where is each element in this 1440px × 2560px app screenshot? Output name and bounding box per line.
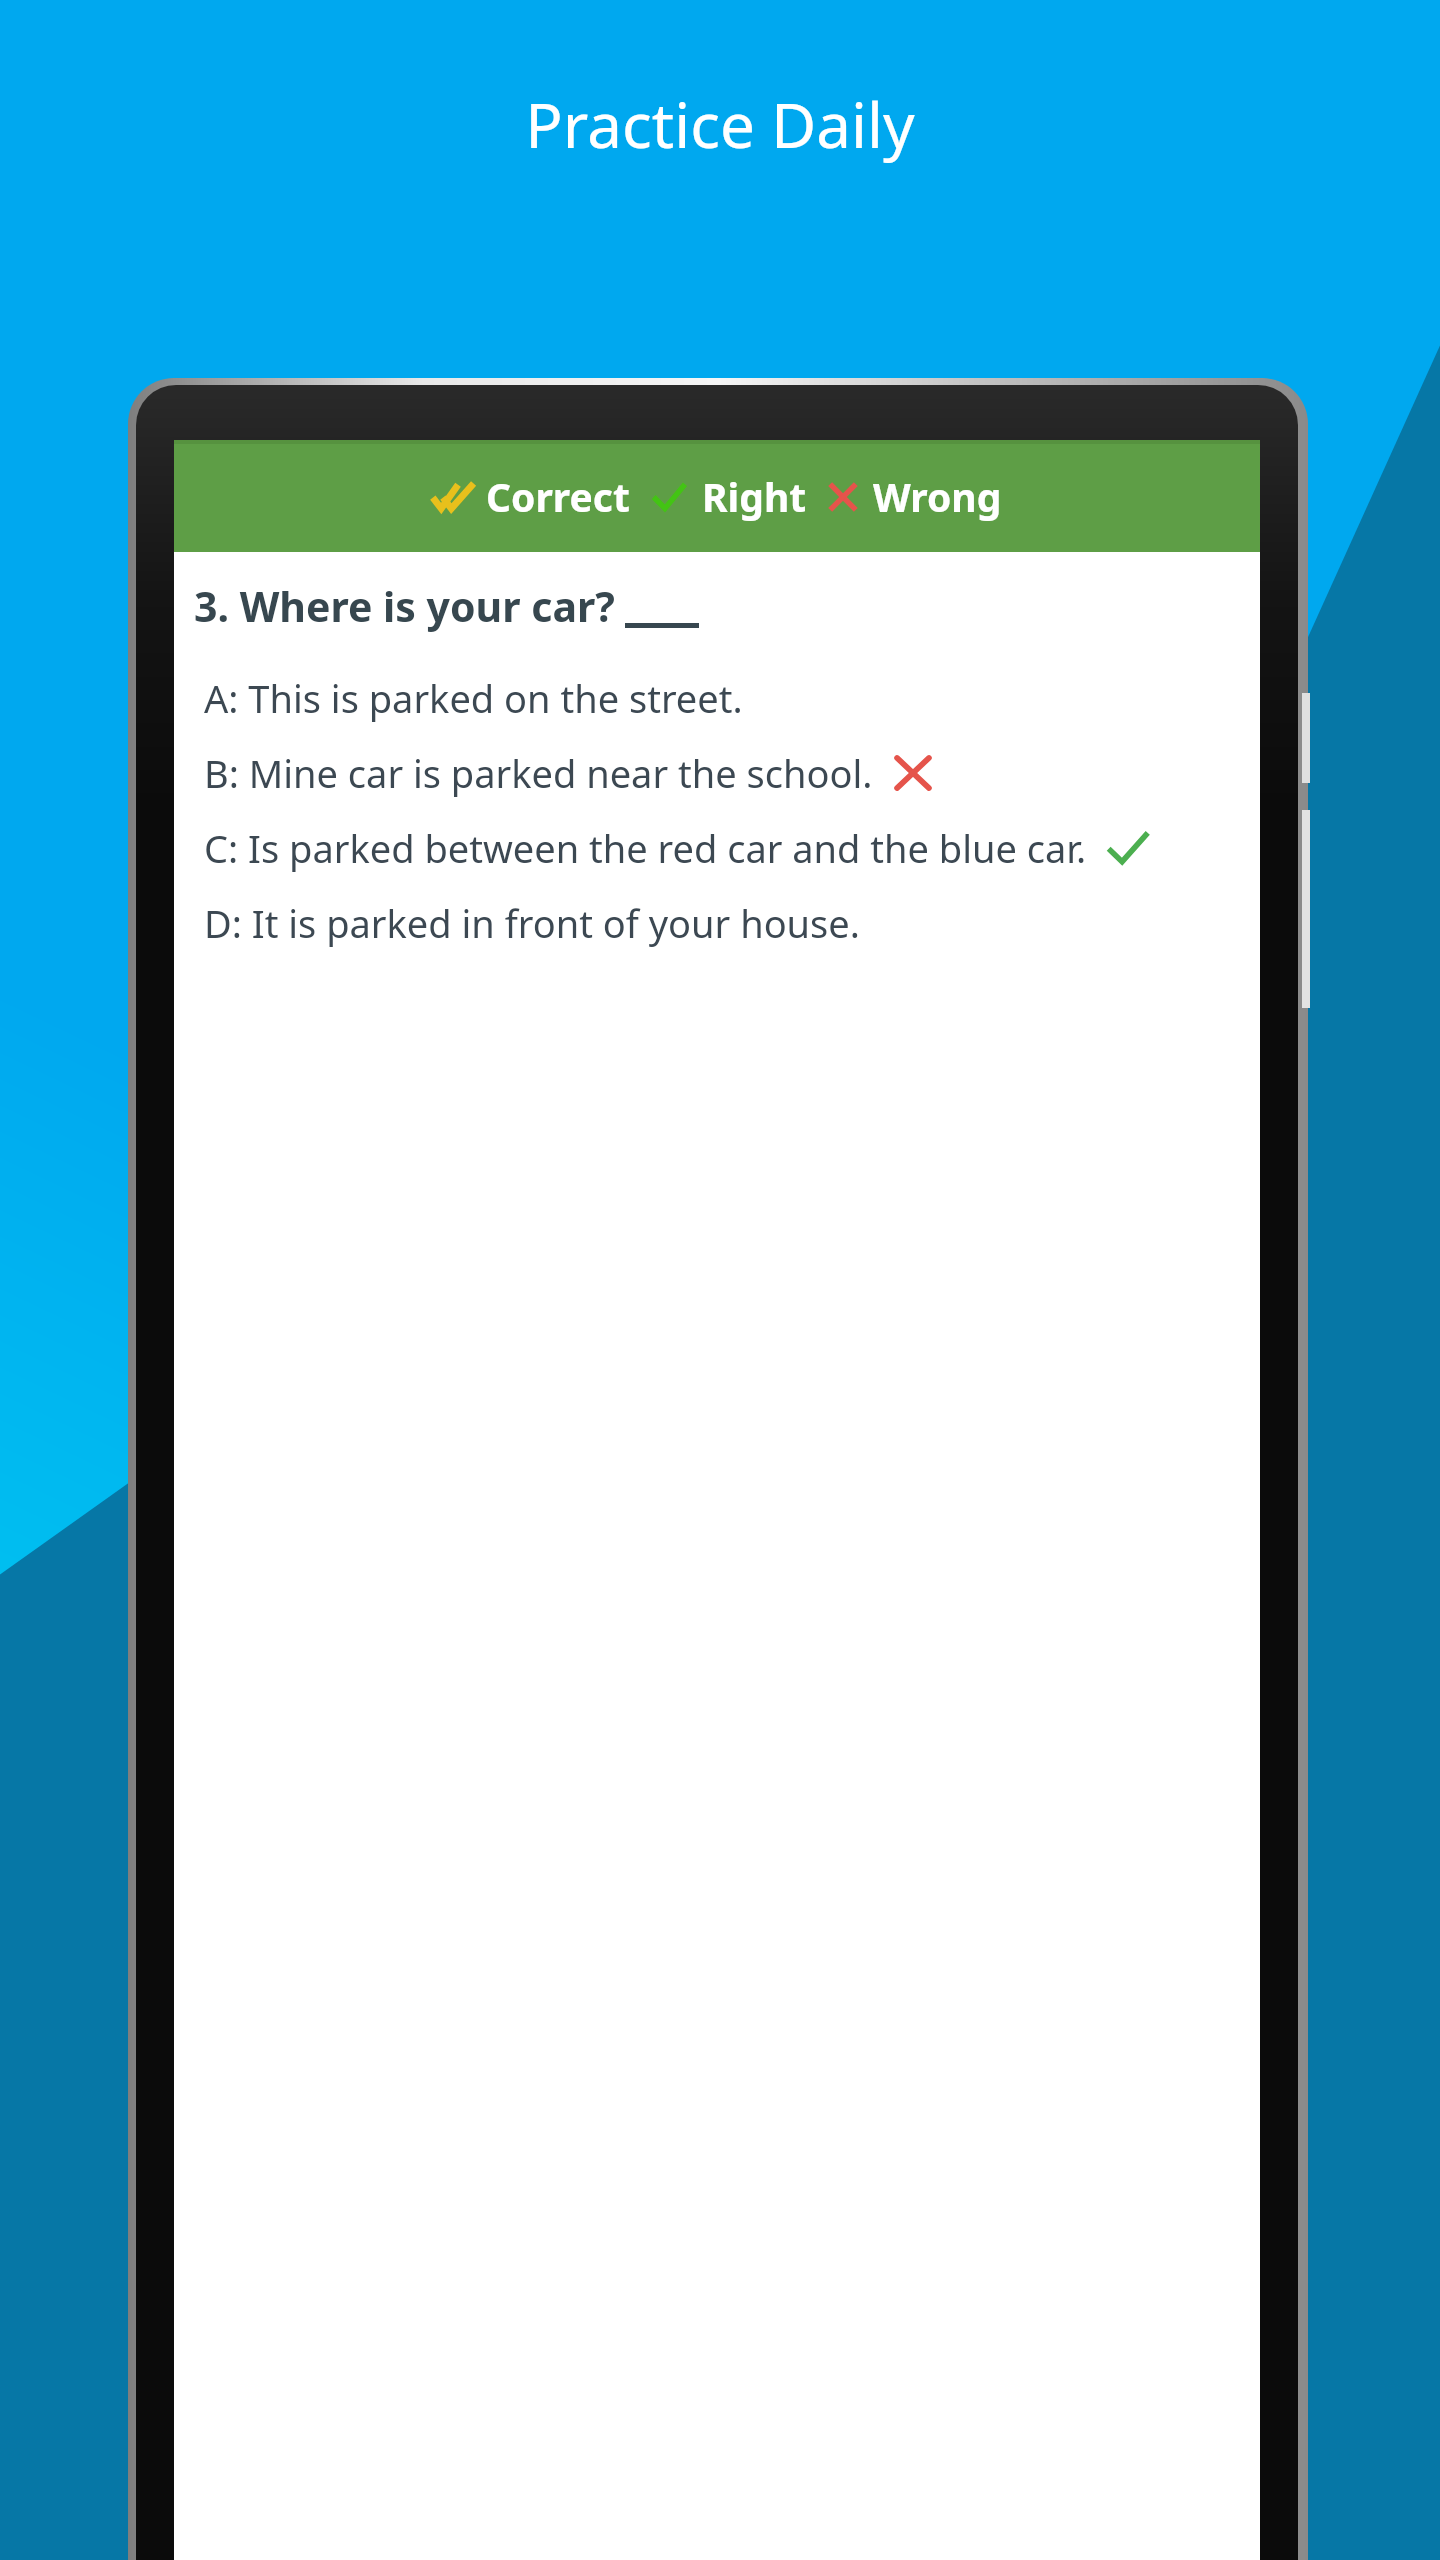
button[interactable]: A: This is parked on the street. (174, 660, 1260, 735)
other: Wrong answer (893, 755, 933, 791)
other: Correct answer (1107, 830, 1149, 866)
staticText: A: This is parked on the street. (204, 672, 743, 724)
staticText: Right (702, 470, 807, 523)
button[interactable]: Correct (174, 440, 1260, 552)
staticText: Wrong (873, 470, 1002, 523)
staticText: B: Mine car is parked near the school. (204, 747, 873, 799)
staticText: D: It is parked in front of your house. (204, 897, 860, 949)
staticText: Correct (486, 470, 630, 523)
staticText: Practice Daily (525, 82, 915, 166)
button[interactable]: D: It is parked in front of your house. (174, 885, 1260, 960)
staticText: 3. Where is your car? (194, 578, 615, 634)
staticText: C: Is parked between the red car and the… (204, 822, 1087, 874)
button[interactable]: C: Is parked between the red car and the… (174, 810, 1260, 885)
button[interactable]: B: Mine car is parked near the school. (174, 735, 1260, 810)
